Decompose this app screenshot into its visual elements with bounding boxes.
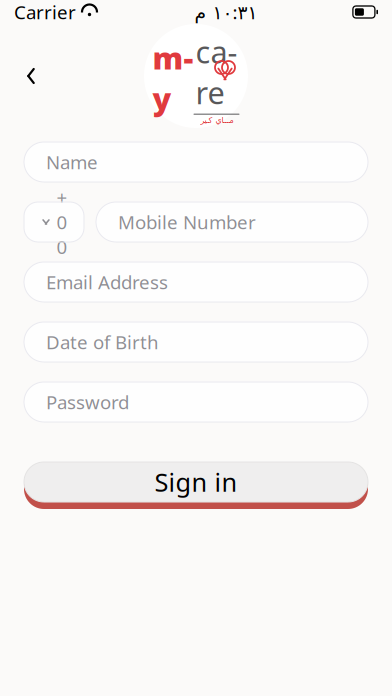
button[interactable]: Name — [24, 142, 368, 182]
staticText: Email Address — [46, 270, 168, 294]
staticText: +00 — [56, 185, 67, 259]
staticText: Name — [46, 150, 98, 174]
staticText: care — [195, 31, 237, 113]
staticText: my — [152, 37, 193, 119]
button[interactable]: Date of Birth — [24, 322, 368, 362]
button[interactable]: Mobile Number — [96, 202, 368, 242]
button[interactable]: Back — [9, 54, 53, 98]
button[interactable]: +00 — [24, 202, 84, 242]
staticText: ١٠:٣١ م — [194, 0, 257, 24]
staticText: Password — [46, 390, 129, 414]
staticText: Mobile Number — [118, 210, 256, 234]
button[interactable]: Email Address — [24, 262, 368, 302]
staticText: Date of Birth — [46, 330, 159, 354]
staticText: Carrier — [14, 0, 76, 24]
button[interactable]: Password — [24, 382, 368, 422]
staticText: Sign in — [154, 465, 237, 499]
staticText: مـــاي كـير — [200, 116, 233, 125]
button[interactable]: Sign in — [24, 462, 368, 509]
